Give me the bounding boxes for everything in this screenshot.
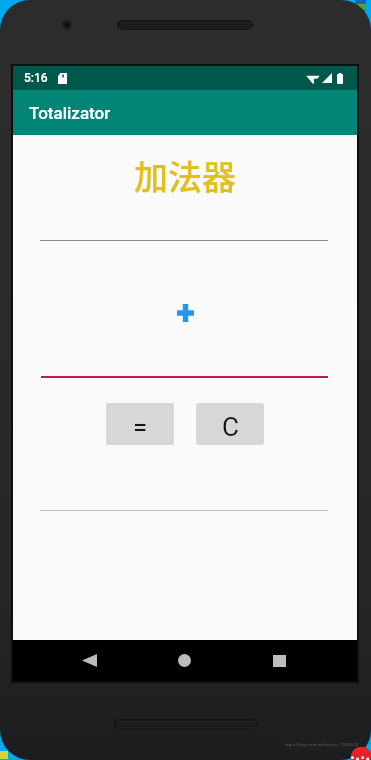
staticText: https://blog.csdn.net/weixin_12345678 [285, 742, 359, 747]
staticText: 5:16 [24, 71, 48, 85]
button[interactable]: Back [57, 640, 121, 681]
button[interactable]: Home [152, 640, 216, 681]
button[interactable]: Recent apps [247, 640, 311, 681]
staticText: 加法器 [13, 151, 357, 200]
staticText: = [133, 412, 148, 442]
button[interactable]: = [106, 403, 174, 445]
staticText: Totalizator [29, 103, 111, 123]
staticText: C [222, 412, 239, 442]
button[interactable]: C [196, 403, 264, 445]
